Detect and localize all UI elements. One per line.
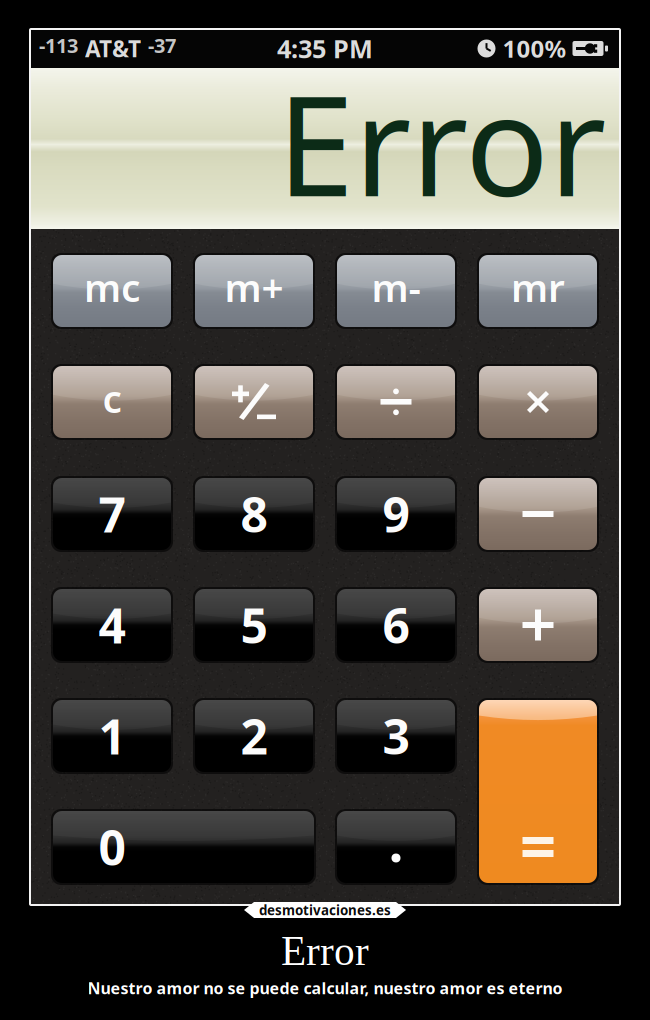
staticText: -113	[39, 32, 78, 59]
button[interactable]: 5	[195, 589, 313, 661]
staticText: AT&T	[85, 33, 141, 63]
staticText: m+	[224, 261, 283, 313]
staticText: m-	[371, 261, 420, 313]
button[interactable]	[337, 366, 455, 438]
staticText: desmotivaciones.es	[259, 901, 391, 919]
button[interactable]	[195, 366, 313, 438]
button[interactable]: mr	[479, 255, 597, 327]
staticText: 3	[382, 704, 409, 768]
button[interactable]: 7	[53, 478, 171, 550]
button[interactable]: 3	[337, 700, 455, 772]
button[interactable]: 4	[53, 589, 171, 661]
staticText: c	[102, 372, 121, 424]
staticText: 4	[98, 593, 125, 657]
button[interactable]	[479, 478, 597, 550]
button[interactable]: 1	[53, 700, 171, 772]
staticText: Error	[277, 50, 606, 234]
staticText: 0	[98, 815, 125, 879]
button[interactable]: 6	[337, 589, 455, 661]
button[interactable]: mc	[53, 255, 171, 327]
button[interactable]: 8	[195, 478, 313, 550]
button[interactable]	[479, 589, 597, 661]
staticText: 7	[98, 482, 125, 546]
button[interactable]	[479, 366, 597, 438]
staticText: Error	[281, 928, 369, 974]
staticText: 8	[240, 482, 267, 546]
staticText: 6	[382, 593, 409, 657]
staticText: mr	[511, 261, 565, 313]
button[interactable]	[479, 700, 597, 883]
staticText: 5	[240, 593, 267, 657]
button[interactable]: c	[53, 366, 171, 438]
staticText: 1	[98, 704, 125, 768]
staticText: -37	[148, 32, 176, 59]
staticText: Nuestro amor no se puede calcular, nuest…	[87, 977, 562, 999]
button[interactable]: 0	[53, 811, 314, 883]
staticText: 9	[382, 482, 409, 546]
button[interactable]: m+	[195, 255, 313, 327]
staticText: 2	[240, 704, 267, 768]
button[interactable]: 9	[337, 478, 455, 550]
button[interactable]	[337, 811, 455, 883]
button[interactable]: 2	[195, 700, 313, 772]
staticText: 100%	[502, 33, 566, 64]
staticText: 4:35 PM	[277, 32, 373, 65]
staticText: mc	[84, 261, 140, 313]
button[interactable]: m-	[337, 255, 455, 327]
